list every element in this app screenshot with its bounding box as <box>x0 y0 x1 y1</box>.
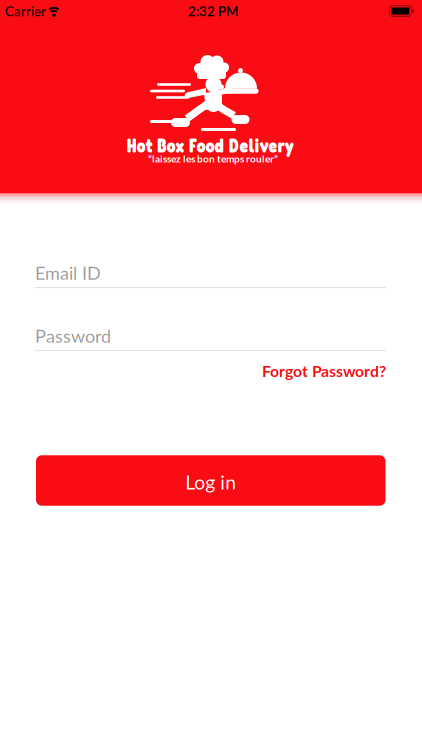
staticText: Hot Box Food Delivery <box>126 134 293 157</box>
button[interactable]: Email ID <box>35 262 386 288</box>
staticText: Forgot Password? <box>262 362 386 380</box>
button[interactable]: Log in <box>36 455 385 506</box>
button[interactable]: Forgot Password? <box>262 362 386 380</box>
staticText: “laissez les bon temps rouler” <box>148 152 278 165</box>
staticText: Log in <box>185 470 236 494</box>
staticText: 2:32 PM <box>188 3 238 19</box>
staticText: Email ID <box>35 262 101 284</box>
staticText: Carrier <box>5 3 46 19</box>
staticText: Password <box>35 325 111 347</box>
button[interactable]: Password <box>35 325 386 351</box>
